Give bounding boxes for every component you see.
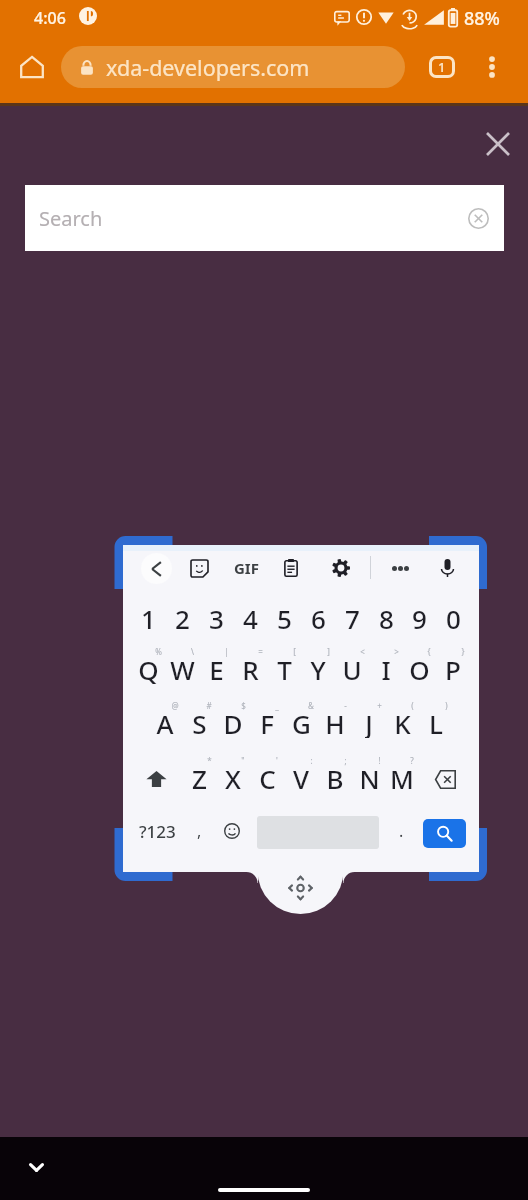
staticText: GIF	[234, 558, 259, 578]
staticText: Y	[310, 652, 326, 684]
button[interactable]: More	[385, 553, 415, 583]
staticText: 6	[311, 601, 326, 633]
button[interactable]: A	[148, 706, 182, 738]
button[interactable]: P	[436, 652, 470, 684]
staticText: L	[429, 706, 443, 738]
staticText: |	[224, 646, 229, 657]
button[interactable]: Clipboard	[275, 552, 307, 584]
button[interactable]: Search	[423, 819, 466, 848]
button[interactable]: S	[182, 706, 216, 738]
button[interactable]: B	[318, 761, 352, 793]
button[interactable]: Home	[12, 47, 52, 87]
button[interactable]: J	[352, 706, 386, 738]
staticText: K	[394, 706, 411, 738]
button[interactable]: 3	[199, 601, 233, 633]
button[interactable]: Emoji	[218, 817, 246, 845]
staticText: {	[427, 646, 431, 657]
staticText: &	[308, 700, 314, 711]
button[interactable]: Q	[131, 652, 165, 684]
staticText: @	[171, 700, 179, 711]
staticText: N	[359, 761, 380, 793]
staticText: !	[378, 755, 381, 766]
button[interactable]: V	[284, 761, 318, 793]
staticText: %	[155, 646, 162, 657]
button[interactable]: Symbols	[125, 815, 189, 847]
staticText: J	[365, 706, 373, 738]
staticText: <	[360, 646, 365, 657]
staticText: $	[241, 700, 246, 711]
button[interactable]: Backspace	[426, 761, 464, 797]
button[interactable]: Hide keyboard	[16, 1147, 56, 1187]
staticText: 2	[175, 601, 190, 633]
staticText: #	[206, 700, 212, 711]
staticText: 9	[412, 601, 427, 633]
staticText: 1	[141, 601, 156, 633]
staticText: ;	[344, 755, 347, 766]
button[interactable]: K	[385, 706, 419, 738]
button[interactable]: Stickers	[183, 552, 215, 584]
button[interactable]: X	[216, 761, 250, 793]
button[interactable]: 8	[369, 601, 403, 633]
button[interactable]: xda-developers.com	[61, 46, 405, 88]
staticText: }	[461, 646, 465, 657]
staticText: 3	[209, 601, 224, 633]
button[interactable]: N	[352, 761, 386, 793]
staticText: .	[399, 820, 404, 842]
button[interactable]: H	[318, 706, 352, 738]
staticText: Z	[192, 761, 207, 793]
button[interactable]: L	[419, 706, 453, 738]
staticText: 4	[243, 601, 258, 633]
staticText: ?123	[139, 820, 176, 843]
button[interactable]: C	[250, 761, 284, 793]
staticText: I	[381, 652, 391, 684]
button[interactable]: Voice input	[431, 552, 463, 584]
staticText: E	[209, 652, 224, 684]
button[interactable]: W	[165, 652, 199, 684]
button[interactable]: Settings	[325, 552, 357, 584]
button[interactable]: GIF	[228, 553, 264, 583]
button[interactable]: E	[199, 652, 233, 684]
button[interactable]: O	[402, 652, 436, 684]
staticText: U	[342, 652, 362, 684]
button[interactable]: Y	[301, 652, 335, 684]
staticText: F	[260, 706, 274, 738]
staticText: W	[170, 652, 195, 684]
button[interactable]: More options	[472, 47, 512, 87]
button[interactable]: Back	[141, 553, 172, 584]
button[interactable]: U	[335, 652, 369, 684]
staticText: *	[207, 755, 212, 766]
button[interactable]: Clear	[464, 204, 492, 232]
staticText: G	[292, 706, 311, 738]
button[interactable]: T	[267, 652, 301, 684]
button[interactable]: R	[233, 652, 267, 684]
button[interactable]: Shift	[137, 761, 175, 797]
staticText: 1	[438, 58, 446, 76]
button[interactable]: I	[369, 652, 403, 684]
button[interactable]: Search	[25, 185, 504, 251]
button[interactable]: M	[385, 761, 419, 793]
button[interactable]: Close	[476, 122, 520, 166]
button[interactable]: Z	[182, 761, 216, 793]
button[interactable]: 9	[402, 601, 436, 633]
staticText: 88%	[464, 6, 500, 31]
staticText: Search	[39, 205, 103, 232]
button[interactable]: G	[284, 706, 318, 738]
staticText: T	[277, 652, 292, 684]
button[interactable]: Tabs	[422, 47, 462, 87]
button[interactable]: F	[250, 706, 284, 738]
staticText: D	[223, 706, 243, 738]
staticText: 0	[446, 601, 461, 633]
button[interactable]: ,	[186, 815, 212, 847]
button[interactable]: D	[216, 706, 250, 738]
staticText: )	[445, 700, 448, 711]
button[interactable]: .	[388, 815, 414, 847]
button[interactable]: 0	[436, 601, 470, 633]
button[interactable]: 7	[335, 601, 369, 633]
staticText: P	[445, 652, 461, 684]
button[interactable]: 5	[267, 601, 301, 633]
button[interactable]: 6	[301, 601, 335, 633]
button[interactable]: 2	[165, 601, 199, 633]
button[interactable]: 1	[131, 601, 165, 633]
button[interactable]: 4	[233, 601, 267, 633]
